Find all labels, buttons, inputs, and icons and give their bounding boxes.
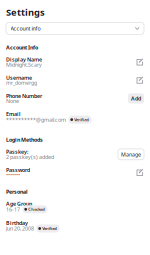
staticText: Username: [6, 74, 32, 81]
staticText: Phone Number: [6, 92, 42, 99]
button[interactable]: Edit display name: [136, 58, 144, 66]
button[interactable]: Account info: [6, 22, 144, 34]
staticText: Add: [131, 95, 141, 102]
staticText: Password: [6, 166, 30, 173]
staticText: Age Group: [6, 200, 32, 207]
staticText: None: [6, 97, 19, 104]
staticText: Verified: [74, 117, 89, 122]
staticText: Settings: [6, 6, 45, 18]
staticText: Personal: [6, 188, 28, 195]
staticText: Birthday: [6, 219, 28, 226]
staticText: **********@gmail.com: [6, 116, 66, 123]
staticText: Email: [6, 110, 21, 118]
staticText: Display Name: [6, 56, 42, 63]
staticText: Checked: [28, 207, 45, 212]
staticText: Verified: [42, 226, 57, 231]
staticText: •••••••: [6, 171, 20, 179]
staticText: Account Info: [6, 44, 38, 51]
button[interactable]: Add: [128, 93, 144, 104]
staticText: 2 passkey(s) added: [6, 153, 54, 160]
staticText: Account info: [10, 25, 40, 32]
button[interactable]: Edit password: [136, 168, 144, 176]
staticText: Jun 20, 2008: [6, 225, 34, 232]
staticText: Midnight.Scary: [6, 61, 42, 68]
button[interactable]: Manage: [118, 149, 144, 160]
staticText: mr_domergg: [6, 79, 37, 86]
staticText: Passkey:: [6, 148, 28, 155]
staticText: Manage: [121, 151, 141, 158]
button[interactable]: Edit username: [136, 76, 144, 84]
staticText: Login Methods: [6, 136, 43, 143]
staticText: 16-17: [6, 206, 20, 213]
